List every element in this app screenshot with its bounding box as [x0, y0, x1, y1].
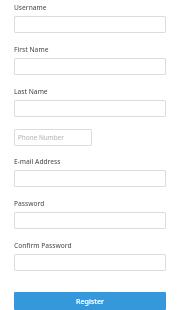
staticText: Confirm Password	[14, 241, 72, 250]
button[interactable]	[14, 170, 166, 187]
button[interactable]	[14, 16, 166, 33]
button[interactable]: Register	[14, 292, 166, 310]
staticText: Username	[14, 3, 47, 12]
button[interactable]	[14, 212, 166, 229]
staticText: Register	[76, 296, 104, 306]
button[interactable]	[14, 58, 166, 75]
staticText: Phone Number	[18, 133, 64, 142]
button[interactable]: Phone Number	[14, 129, 92, 146]
button[interactable]	[14, 100, 166, 117]
button[interactable]	[14, 254, 166, 271]
staticText: E-mail Address	[14, 157, 61, 166]
staticText: First Name	[14, 45, 49, 54]
staticText: Last Name	[14, 87, 48, 96]
staticText: Password	[14, 199, 45, 208]
